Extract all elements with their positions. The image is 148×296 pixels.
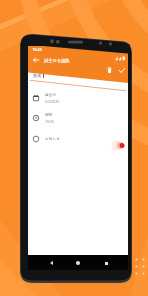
button[interactable]: Recents <box>99 257 113 270</box>
button[interactable]: Delete <box>103 63 116 76</box>
staticText: 10:48 <box>32 47 42 52</box>
staticText: お知らせ <box>45 137 60 142</box>
staticText: 誕生日を編集 <box>44 58 70 63</box>
staticText: 牧真 <box>33 73 42 78</box>
button[interactable]: Save <box>115 64 128 77</box>
button[interactable]: Home <box>71 256 85 269</box>
staticText: 時間 <box>45 113 53 118</box>
staticText: 18:00 <box>45 119 54 124</box>
button[interactable]: 時間 <box>28 108 128 126</box>
button[interactable]: 誕生日 <box>28 88 128 106</box>
staticText: 5/3/2020 <box>45 99 60 104</box>
staticText: 誕生日 <box>45 93 56 98</box>
button[interactable]: お知らせ <box>28 129 128 147</box>
button[interactable]: Back <box>44 256 58 269</box>
button[interactable]: Back <box>28 52 43 68</box>
